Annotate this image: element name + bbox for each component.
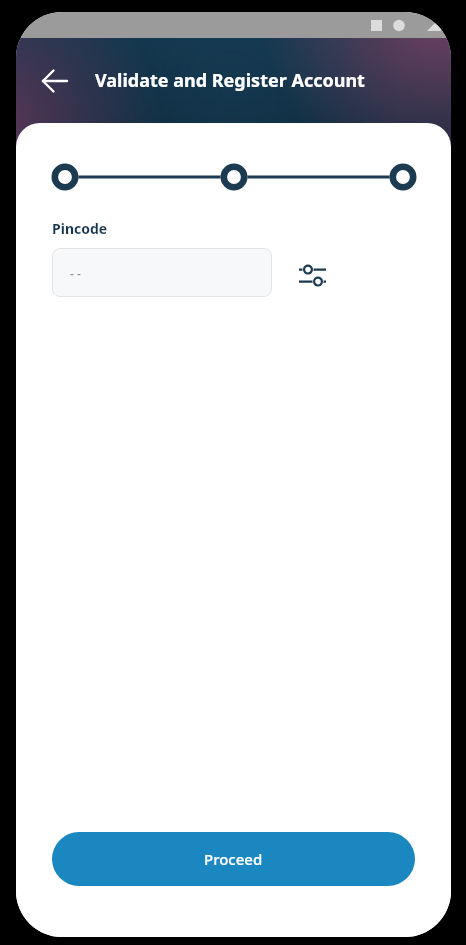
staticText: Validate and Register Account [95, 68, 365, 93]
staticText: - - [70, 265, 81, 281]
button[interactable] [34, 60, 76, 102]
staticText: Proceed [204, 849, 263, 869]
button[interactable]: Proceed [52, 832, 415, 886]
button[interactable]: - - [52, 248, 272, 297]
button[interactable] [292, 255, 334, 297]
staticText: Pincode [52, 219, 108, 238]
